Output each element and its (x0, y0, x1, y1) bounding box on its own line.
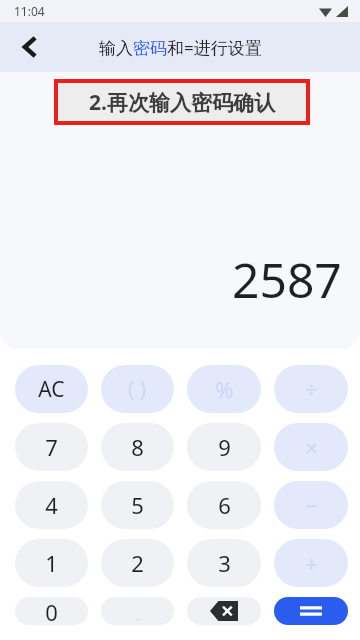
button[interactable]: 1 (15, 539, 88, 587)
staticText: 11:04 (14, 3, 45, 19)
staticText: 8 (131, 432, 144, 462)
staticText: + (305, 548, 318, 578)
staticText: − (305, 490, 318, 520)
staticText: 5 (131, 490, 144, 520)
button[interactable] (274, 597, 348, 625)
staticText: % (215, 374, 234, 404)
button[interactable]: × (274, 423, 348, 471)
button[interactable]: 3 (187, 539, 261, 587)
staticText: 输入密码和=进行设置 (99, 36, 262, 59)
button[interactable]: 8 (101, 423, 174, 471)
staticText: 4 (45, 490, 58, 520)
button[interactable]: Back (8, 25, 52, 69)
button[interactable]: ÷ (274, 365, 348, 413)
button[interactable]: . (101, 597, 174, 625)
button[interactable]: 9 (187, 423, 261, 471)
staticText: 6 (218, 490, 231, 520)
button[interactable]: 2 (101, 539, 174, 587)
staticText: 2587 (232, 247, 342, 312)
staticText: AC (38, 375, 65, 404)
button[interactable]: % (187, 365, 261, 413)
button[interactable]: 0 (15, 597, 88, 625)
staticText: 9 (218, 432, 231, 462)
staticText: 3 (218, 548, 231, 578)
staticText: × (305, 432, 318, 462)
staticText: 7 (45, 432, 58, 462)
button[interactable]: Backspace (187, 597, 261, 625)
staticText: 2 (131, 548, 144, 578)
button[interactable]: AC (15, 365, 88, 413)
staticText: ( ) (128, 375, 147, 404)
button[interactable]: 5 (101, 481, 174, 529)
staticText: 1 (45, 548, 58, 578)
button[interactable]: 4 (15, 481, 88, 529)
staticText: 2.再次输入密码确认 (89, 88, 275, 117)
button[interactable]: 6 (187, 481, 261, 529)
button[interactable]: − (274, 481, 348, 529)
button[interactable]: + (274, 539, 348, 587)
button[interactable]: 7 (15, 423, 88, 471)
staticText: ÷ (305, 374, 318, 404)
button[interactable]: ( ) (101, 365, 174, 413)
staticText: 0 (45, 597, 58, 625)
